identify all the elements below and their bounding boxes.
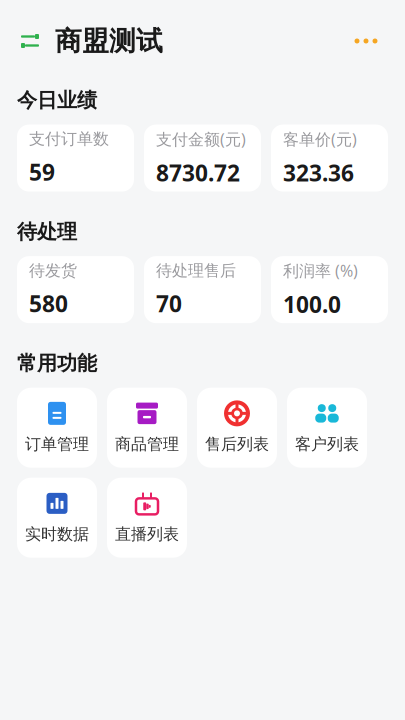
staticText: 支付金额(元) [156,128,246,150]
staticText: 客单价(元) [283,128,357,150]
staticText: 支付订单数 [29,129,109,149]
button[interactable]: 直播列表 [107,478,187,558]
button[interactable]: 切换店铺 [17,28,43,54]
staticText: 商盟测试 [55,25,163,57]
staticText: 8730.72 [156,158,240,188]
staticText: 售后列表 [205,434,269,454]
button[interactable]: 客单价(元) [271,125,388,192]
staticText: 客户列表 [295,434,359,454]
button[interactable]: 订单管理 [17,388,97,468]
button[interactable]: 售后列表 [197,388,277,468]
button[interactable]: 待处理售后 [144,256,261,323]
button[interactable]: 待发货 [17,256,134,323]
staticText: 直播列表 [115,524,179,544]
staticText: 实时数据 [25,524,89,544]
staticText: 利润率 (%) [283,260,358,281]
staticText: 323.36 [283,158,354,188]
staticText: 商品管理 [115,434,179,454]
staticText: 100.0 [283,289,341,319]
staticText: 订单管理 [25,434,89,454]
staticText: 59 [29,157,55,187]
staticText: 580 [29,288,68,318]
button[interactable]: 更多 [344,26,388,56]
button[interactable]: 支付金额(元) [144,125,261,192]
staticText: 70 [156,288,182,318]
button[interactable]: 商品管理 [107,388,187,468]
button[interactable]: 利润率 (%) [271,256,388,323]
button[interactable]: 客户列表 [287,388,367,468]
staticText: 待发货 [29,261,77,280]
button[interactable]: 支付订单数 [17,125,134,192]
staticText: 待处理 [17,220,77,244]
staticText: 今日业绩 [17,88,97,113]
staticText: 常用功能 [17,351,97,376]
staticText: 待处理售后 [156,261,236,280]
button[interactable]: 实时数据 [17,478,97,558]
